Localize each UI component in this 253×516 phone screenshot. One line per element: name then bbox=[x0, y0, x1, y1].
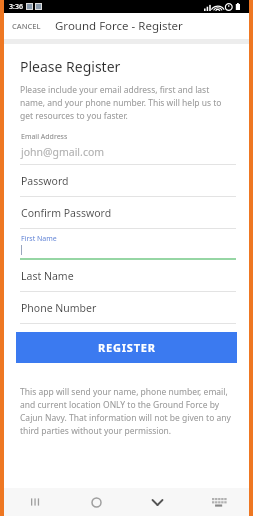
staticText: Password bbox=[21, 174, 69, 188]
staticText: Confirm Password bbox=[21, 206, 112, 220]
button[interactable]: REGISTER bbox=[16, 332, 237, 363]
button[interactable]: First Name bbox=[9, 229, 244, 260]
staticText: Last Name bbox=[21, 269, 74, 283]
staticText: Email Address bbox=[21, 132, 68, 142]
button[interactable]: Back bbox=[127, 488, 188, 516]
staticText: 3:36 bbox=[9, 2, 23, 12]
staticText: Phone Number bbox=[21, 301, 97, 315]
button[interactable]: Keyboard bbox=[188, 488, 249, 516]
staticText: Ground Force - Register bbox=[55, 18, 183, 34]
staticText: REGISTER bbox=[98, 340, 156, 355]
button[interactable]: Last Name bbox=[9, 260, 244, 292]
staticText: First Name bbox=[21, 234, 57, 244]
button[interactable]: Confirm Password bbox=[9, 197, 244, 229]
button[interactable]: Password bbox=[9, 165, 244, 197]
staticText: Please Register bbox=[20, 57, 121, 76]
staticText: Please include your email address, first… bbox=[20, 84, 234, 122]
staticText: CANCEL bbox=[12, 21, 41, 31]
button[interactable]: Recent apps bbox=[4, 488, 66, 516]
button[interactable]: Email Address bbox=[9, 132, 244, 165]
staticText: john@gmail.com bbox=[21, 145, 105, 159]
button[interactable]: Home bbox=[66, 488, 127, 516]
button[interactable]: CANCEL bbox=[4, 15, 47, 37]
button[interactable]: Phone Number bbox=[9, 292, 244, 324]
staticText: This app will send your name, phone numb… bbox=[20, 386, 235, 437]
